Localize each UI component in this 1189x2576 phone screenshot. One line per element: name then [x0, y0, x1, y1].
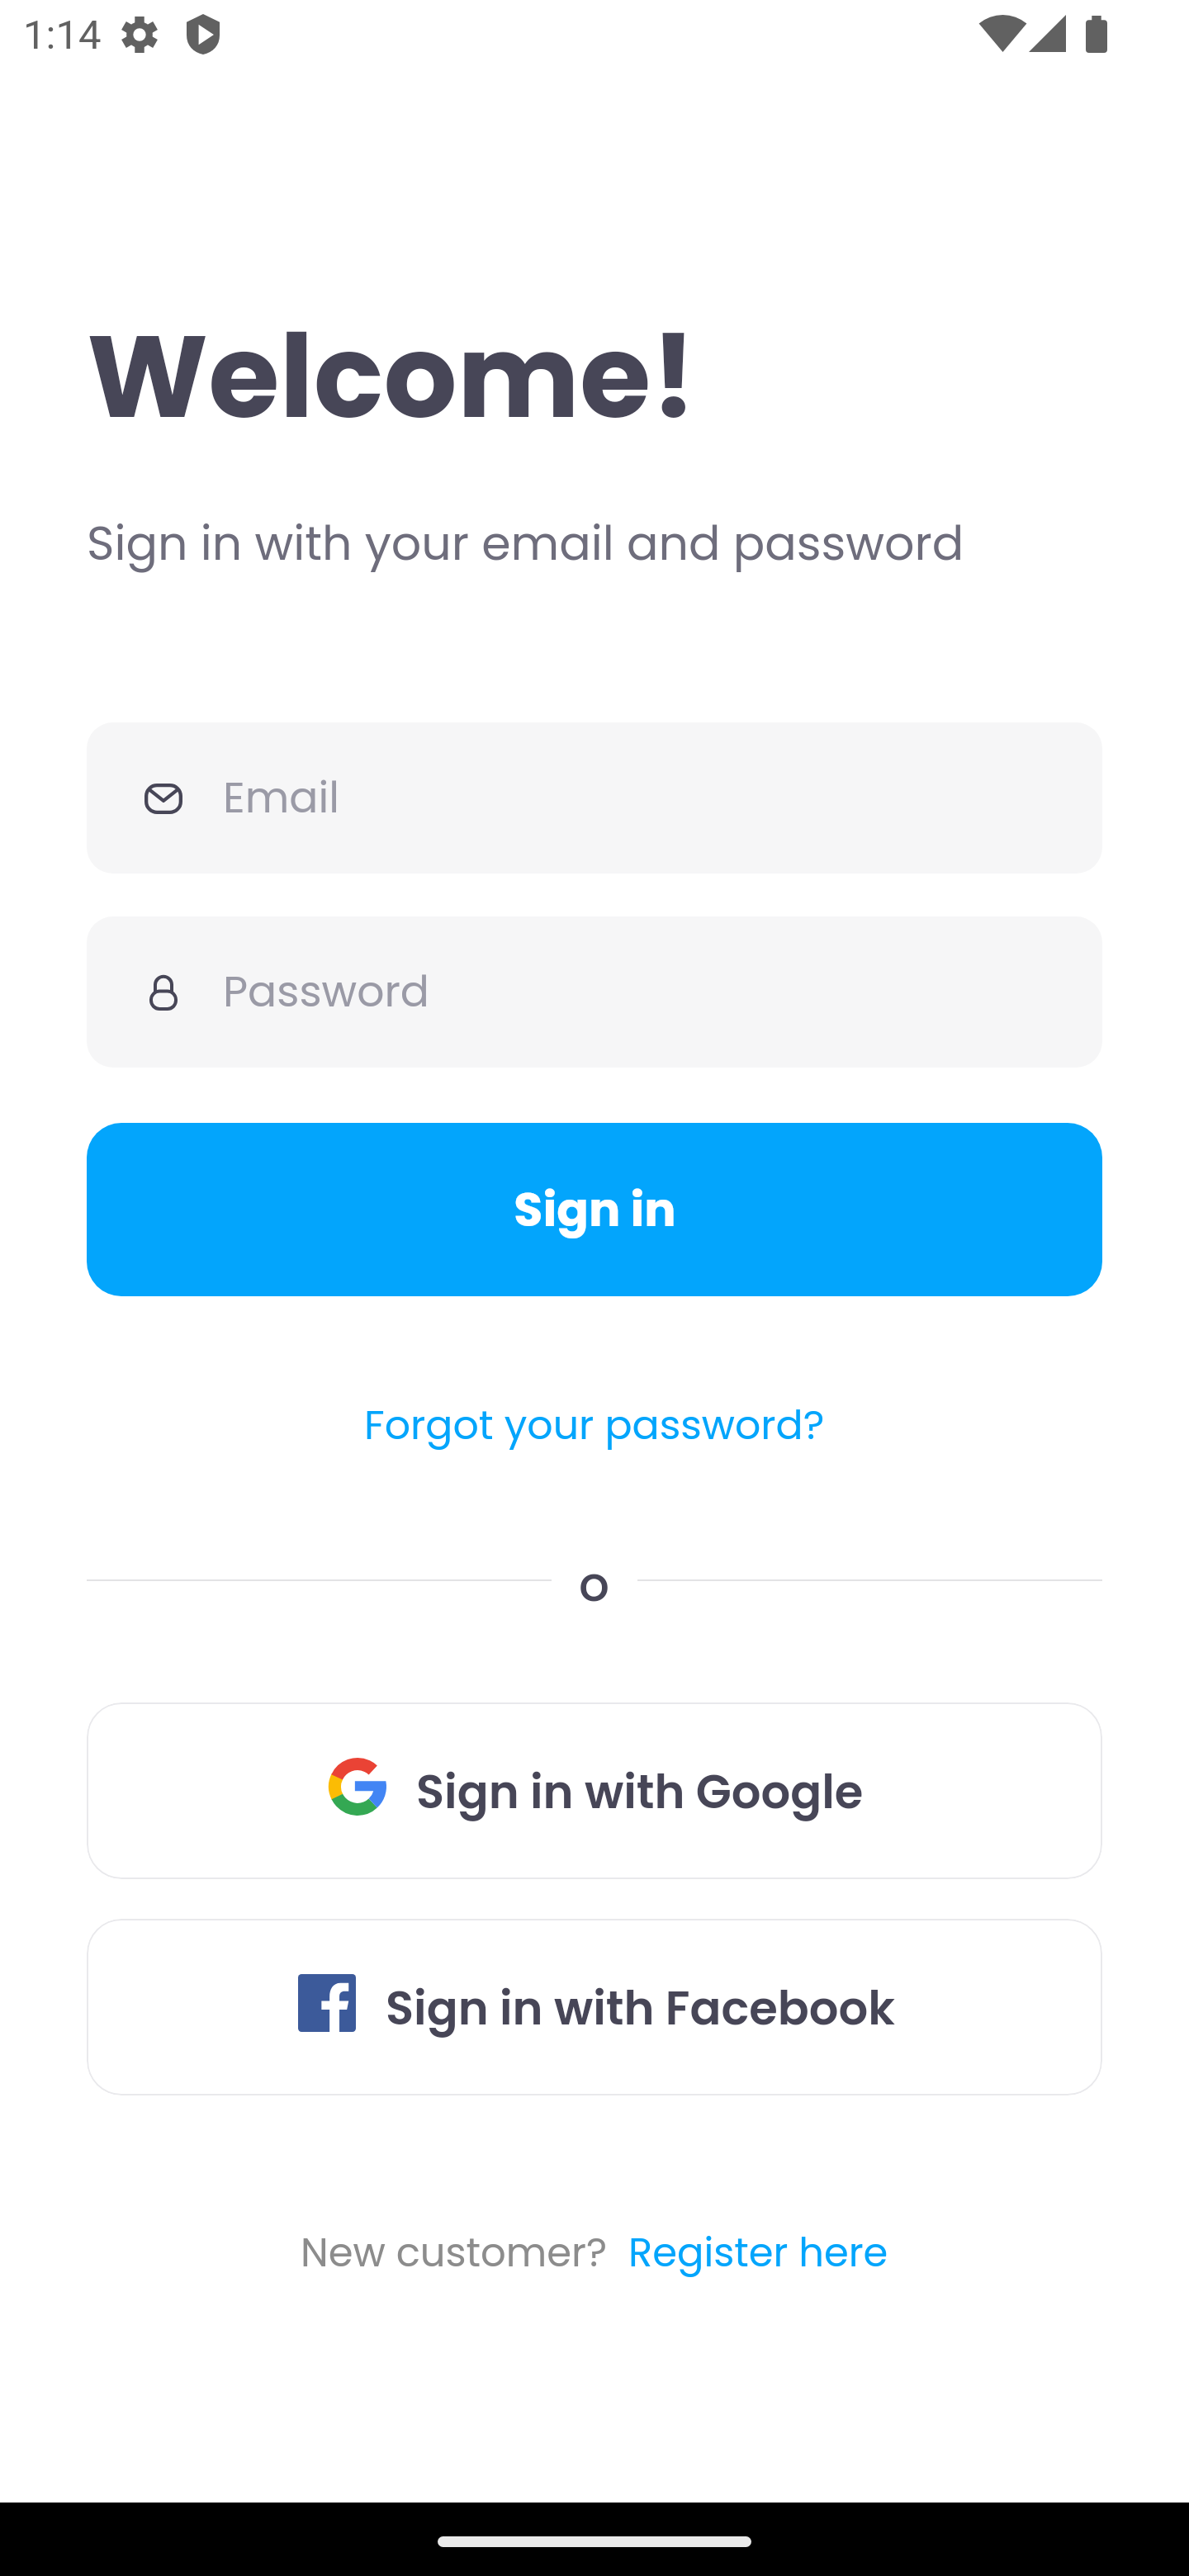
staticText: Sign in with Facebook — [386, 1976, 895, 2040]
button[interactable]: Sign in with Facebook — [87, 1919, 1102, 2095]
button[interactable]: Sign in with Google — [87, 1702, 1102, 1879]
staticText: 1:14 — [23, 12, 102, 59]
staticText: Password — [223, 961, 430, 1021]
button[interactable]: Password — [87, 916, 1102, 1068]
staticText: Welcome! — [87, 296, 697, 457]
button[interactable]: Email — [87, 722, 1102, 874]
staticText: Forgot your password? — [364, 1397, 825, 1454]
staticText: Sign in with Google — [416, 1759, 864, 1824]
button[interactable]: Sign in — [87, 1123, 1102, 1296]
staticText: o — [579, 1551, 610, 1607]
button[interactable]: Forgot your password? — [339, 1382, 850, 1469]
staticText: Email — [223, 767, 339, 827]
staticText: Sign in — [514, 1177, 676, 1243]
staticText: New customer? — [301, 2225, 628, 2280]
staticText: Sign in with your email and password — [87, 510, 964, 576]
button[interactable]: Register here — [628, 2225, 888, 2280]
